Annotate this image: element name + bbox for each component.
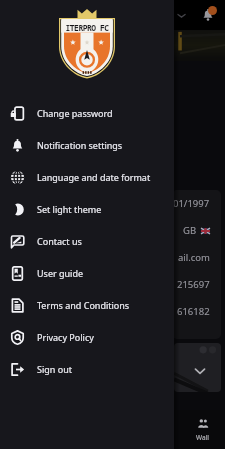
- staticText: Set light theme: [37, 203, 102, 215]
- button[interactable]: Profile: [135, 410, 180, 449]
- button[interactable]: Language and date format: [0, 161, 174, 193]
- button[interactable]: Notifications: [201, 8, 215, 22]
- staticText: 215697: [177, 278, 210, 291]
- button[interactable]: Change password: [0, 97, 174, 129]
- button[interactable]: User guide: [0, 257, 174, 289]
- button[interactable]: Sign out: [0, 353, 174, 385]
- button[interactable]: Set light theme: [0, 193, 174, 225]
- staticText: Privacy Policy: [37, 331, 94, 343]
- staticText: ail.com: [178, 251, 210, 264]
- staticText: Change password: [37, 107, 113, 119]
- staticText: 616182: [177, 305, 210, 318]
- button[interactable]: [174, 343, 221, 392]
- staticText: ITERPRO FC: [59, 22, 115, 33]
- staticText: Contact us: [37, 235, 82, 247]
- button[interactable]: Terms and Conditions: [0, 289, 174, 321]
- button[interactable]: Privacy Policy: [0, 321, 174, 353]
- staticText: Language and date format: [37, 171, 151, 183]
- staticText: Terms and Conditions: [37, 299, 130, 311]
- staticText: 01/1997: [173, 197, 210, 210]
- staticText: Notification settings: [37, 139, 123, 151]
- staticText: User guide: [37, 267, 84, 279]
- button[interactable]: Expand: [177, 11, 186, 20]
- staticText: Wall: [196, 433, 209, 442]
- button[interactable]: Contact us: [0, 225, 174, 257]
- staticText: GB: [183, 224, 197, 237]
- button[interactable]: Notification settings: [0, 129, 174, 161]
- button[interactable]: Wall: [180, 410, 225, 449]
- staticText: Sign out: [37, 363, 72, 375]
